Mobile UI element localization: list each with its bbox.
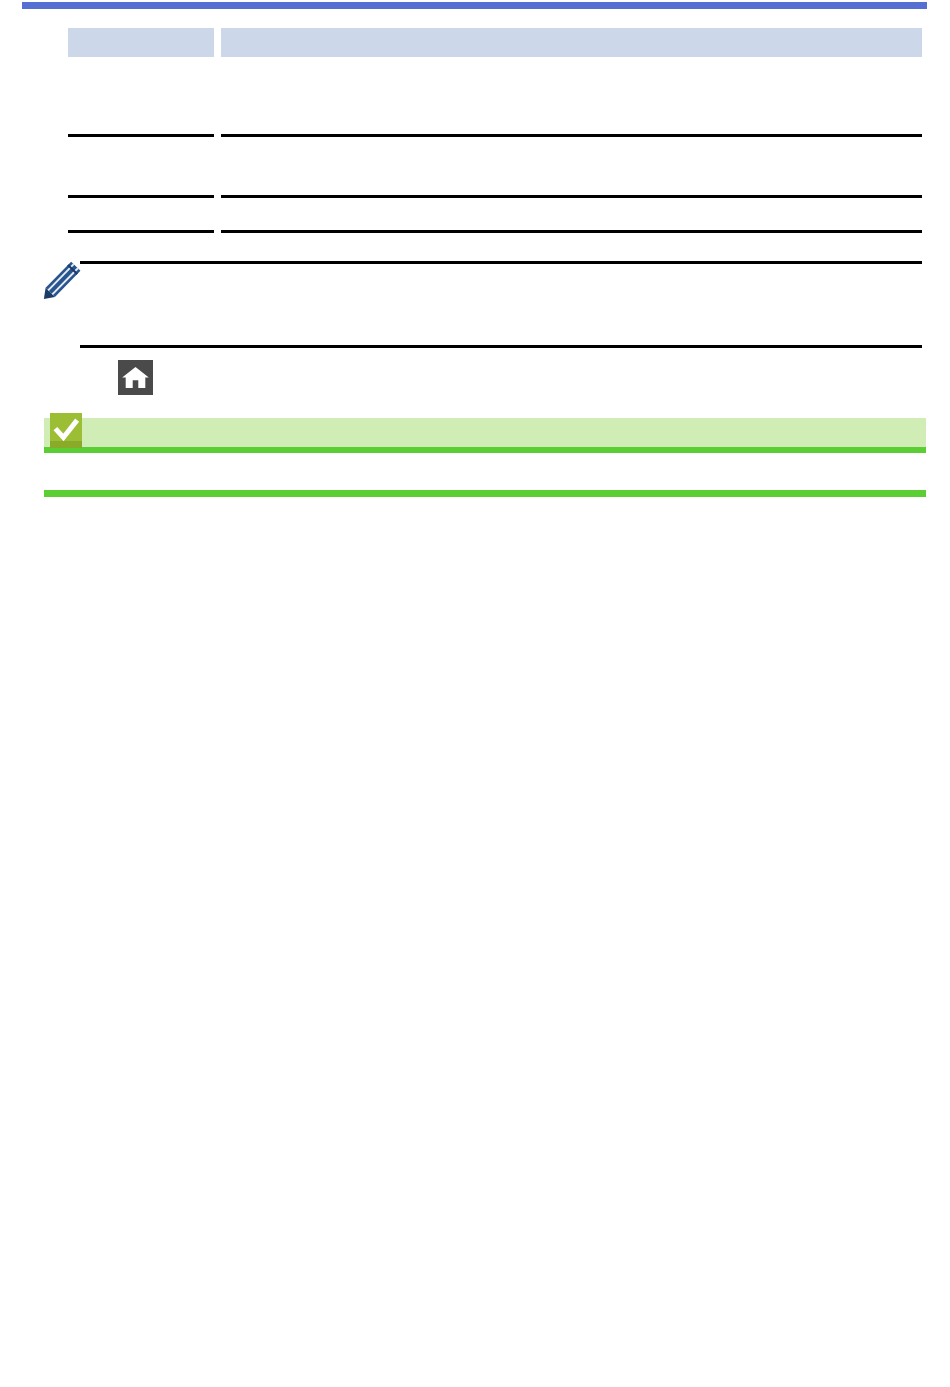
- button[interactable]: Home: [118, 360, 153, 395]
